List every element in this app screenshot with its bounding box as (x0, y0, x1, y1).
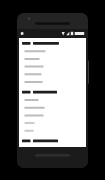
button[interactable]: Backup and reset (22, 82, 83, 90)
button[interactable]: About phone (22, 124, 83, 132)
button[interactable]: Language and input (22, 74, 83, 82)
button[interactable]: Power button (86, 60, 89, 84)
button[interactable]: Support section header (22, 142, 83, 147)
button[interactable]: Location (22, 50, 83, 58)
button[interactable]: Accounts (22, 66, 83, 74)
button[interactable]: System section header (22, 92, 83, 100)
button[interactable]: Personal section header (22, 42, 83, 50)
button[interactable]: Date and time (22, 100, 83, 108)
button[interactable]: Printing (22, 116, 83, 124)
button[interactable]: Accessibility (22, 108, 83, 116)
button[interactable]: Security (22, 58, 83, 66)
button[interactable]: Developer options (22, 132, 83, 140)
